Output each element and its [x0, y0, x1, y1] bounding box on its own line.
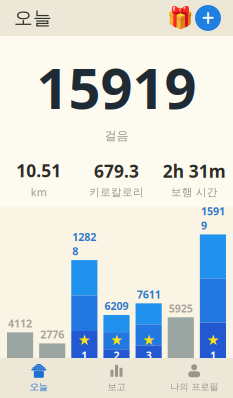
- staticText: 4112: [8, 316, 32, 330]
- staticText: 15919: [201, 204, 225, 232]
- staticText: 10.51: [16, 159, 61, 182]
- staticText: 🎁: [166, 6, 193, 30]
- staticText: 오늘: [30, 381, 48, 393]
- button[interactable]: 추가: [193, 3, 223, 33]
- staticText: ★: [78, 332, 91, 348]
- staticText: 2776: [40, 327, 64, 341]
- staticText: 679.3: [94, 160, 139, 183]
- staticText: ★: [206, 332, 219, 348]
- staticText: 12828: [72, 230, 96, 258]
- staticText: 오늘: [14, 6, 52, 29]
- staticText: 1: [81, 348, 87, 362]
- button[interactable]: 나의 프로필: [155, 358, 233, 398]
- staticText: ★: [142, 332, 155, 348]
- staticText: 화: [111, 366, 122, 379]
- staticText: 5925: [169, 301, 193, 315]
- staticText: 보고: [107, 381, 125, 393]
- button[interactable]: 보고: [78, 358, 155, 398]
- staticText: 2h 31m: [163, 160, 226, 183]
- staticText: 걸음: [104, 128, 128, 143]
- staticText: 보행 시간: [171, 186, 218, 199]
- staticText: km: [31, 185, 47, 199]
- staticText: 15919: [36, 50, 196, 124]
- staticText: 나의 프로필: [170, 381, 218, 393]
- staticText: 1: [210, 348, 216, 362]
- staticText: +: [201, 3, 214, 33]
- staticText: 2: [113, 348, 119, 362]
- staticText: 6209: [104, 299, 128, 313]
- button[interactable]: 선물: [167, 5, 193, 31]
- staticText: ★: [110, 332, 123, 348]
- staticText: 키로칼로리: [89, 186, 144, 199]
- staticText: 3: [146, 348, 152, 362]
- staticText: 7611: [137, 287, 161, 301]
- button[interactable]: 오늘: [0, 358, 78, 398]
